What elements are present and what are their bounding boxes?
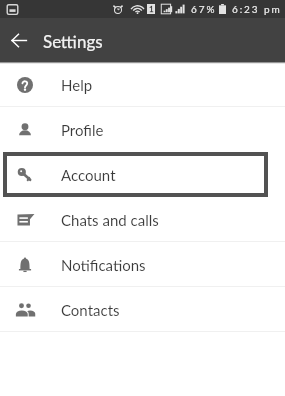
button[interactable]: Help [0, 62, 285, 107]
staticText: Chats and calls [61, 211, 159, 229]
staticText: Profile [61, 121, 104, 139]
button[interactable]: Account [7, 156, 264, 193]
button[interactable]: Notifications [0, 242, 285, 287]
staticText: 67% [191, 3, 217, 15]
button[interactable]: Navigate up [0, 18, 38, 62]
staticText: 1 [149, 4, 154, 14]
staticText: Help [61, 76, 93, 94]
staticText: 6:23 pm [232, 3, 282, 15]
button[interactable]: Profile [0, 107, 285, 152]
button[interactable]: Chats and calls [0, 197, 285, 242]
staticText: Account [61, 166, 116, 184]
staticText: Notifications [61, 256, 146, 274]
staticText: Contacts [61, 301, 120, 319]
staticText: Settings [43, 31, 103, 51]
button[interactable]: Contacts [0, 287, 285, 332]
